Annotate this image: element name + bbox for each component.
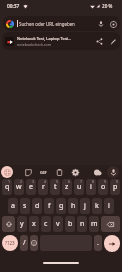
button[interactable]: t xyxy=(50,179,60,195)
button[interactable]: o xyxy=(98,179,108,195)
staticText: x xyxy=(32,219,36,229)
staticText: 2 xyxy=(20,179,23,184)
button[interactable]: c xyxy=(41,216,51,232)
staticText: w xyxy=(16,182,22,192)
staticText: c xyxy=(44,219,48,229)
staticText: 3 xyxy=(32,179,35,184)
staticText: t xyxy=(54,182,57,192)
button[interactable]: y xyxy=(17,216,27,232)
button[interactable]: d xyxy=(32,198,42,214)
button[interactable]: Go xyxy=(104,235,120,252)
staticText: n xyxy=(80,219,85,229)
button[interactable]: q xyxy=(2,179,12,195)
button[interactable]: Notebook Test, Laptop Test… xyxy=(2,32,120,50)
staticText: 6 xyxy=(68,179,71,184)
staticText: h xyxy=(71,201,76,211)
button[interactable]: n xyxy=(77,216,87,232)
button[interactable]: ?123 xyxy=(2,235,18,251)
staticText: v xyxy=(56,219,60,229)
button[interactable]: v xyxy=(53,216,63,232)
button[interactable]: r xyxy=(38,179,48,195)
button[interactable]: Shift xyxy=(2,216,15,232)
button[interactable]: l xyxy=(104,198,114,214)
staticText: notebookcheck.com xyxy=(17,42,52,47)
staticText: r xyxy=(42,182,45,192)
staticText: 4 xyxy=(44,179,47,184)
staticText: i xyxy=(90,182,92,192)
staticText: u xyxy=(77,182,82,192)
button[interactable]: j xyxy=(80,198,90,214)
staticText: j xyxy=(84,201,86,211)
button[interactable]: / xyxy=(20,235,28,251)
staticText: d xyxy=(35,201,40,211)
staticText: p xyxy=(113,182,118,192)
staticText: GIF xyxy=(40,170,47,175)
staticText: e xyxy=(29,182,33,192)
staticText: k xyxy=(95,201,99,211)
staticText: 0 xyxy=(116,179,119,184)
button[interactable]: s xyxy=(20,198,30,214)
staticText: Notebook Test, Laptop Test… xyxy=(17,36,72,41)
staticText: / xyxy=(23,238,26,248)
staticText: . xyxy=(97,238,99,248)
button[interactable]: i xyxy=(86,179,96,195)
button[interactable]: Edit xyxy=(106,34,120,48)
button[interactable]: Google Lens xyxy=(107,18,119,30)
staticText: ?123 xyxy=(5,240,15,246)
button[interactable]: Emoji kitchen xyxy=(1,166,13,178)
button[interactable]: x xyxy=(29,216,39,232)
button[interactable]: Themes xyxy=(91,166,103,178)
button[interactable]: k xyxy=(92,198,102,214)
button[interactable]: Voice search xyxy=(95,18,107,30)
button[interactable]: Settings xyxy=(69,166,81,178)
staticText: 00:37 xyxy=(7,3,20,10)
staticText: y xyxy=(20,219,24,229)
staticText: 5 xyxy=(56,179,59,184)
button[interactable]: Suchen oder URL eingeben xyxy=(3,16,120,31)
button[interactable]: . xyxy=(94,235,102,251)
staticText: 8 xyxy=(92,179,95,184)
staticText: q xyxy=(5,182,10,192)
staticText: 9 xyxy=(104,179,107,184)
staticText: Suchen oder URL eingeben xyxy=(19,21,75,27)
staticText: 1 xyxy=(8,179,11,184)
button[interactable]: u xyxy=(74,179,84,195)
staticText: g xyxy=(59,201,64,211)
button[interactable]: Voice input xyxy=(107,166,119,178)
button[interactable]: GIF xyxy=(37,166,49,178)
button[interactable]: Clipboard xyxy=(53,166,65,178)
button[interactable]: b xyxy=(65,216,75,232)
staticText: m xyxy=(91,219,98,229)
button[interactable]: Stickers xyxy=(22,166,34,178)
staticText: l xyxy=(108,201,110,211)
button[interactable]: g xyxy=(56,198,66,214)
button[interactable]: Emoji xyxy=(30,235,38,251)
staticText: o xyxy=(101,182,106,192)
staticText: z xyxy=(65,182,69,192)
staticText: a xyxy=(11,201,15,211)
staticText: b xyxy=(68,219,73,229)
button[interactable]: p xyxy=(110,179,120,195)
staticText: s xyxy=(23,201,27,211)
button[interactable]: Share xyxy=(92,34,106,48)
button[interactable]: w xyxy=(14,179,24,195)
button[interactable]: Backspace xyxy=(101,216,120,232)
staticText: f xyxy=(48,201,51,211)
staticText: 20 % xyxy=(102,3,113,9)
button[interactable]: m xyxy=(89,216,99,232)
button[interactable]: h xyxy=(68,198,78,214)
button[interactable]: e xyxy=(26,179,36,195)
button[interactable]: a xyxy=(8,198,18,214)
button[interactable]: z xyxy=(62,179,72,195)
staticText: 7 xyxy=(80,179,83,184)
button[interactable]: f xyxy=(44,198,54,214)
